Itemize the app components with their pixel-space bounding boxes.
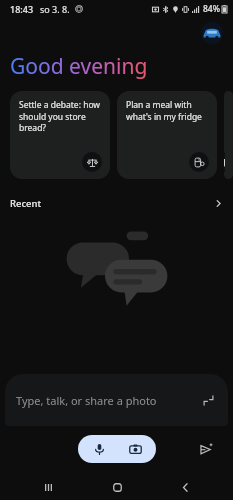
button[interactable]: Give me a workout plan [224,91,233,179]
staticText: 18:43 [10,3,34,15]
staticText: Good evening [10,52,148,81]
staticText: Recent [10,197,42,210]
button[interactable]: Recent [0,193,233,213]
button[interactable]: Voice input [85,435,113,463]
button[interactable]: Plan a meal with what's in my fridge [117,91,217,179]
button[interactable]: Send [195,438,217,460]
button[interactable]: Back [165,474,205,500]
button[interactable]: Home [97,474,137,500]
staticText: so 3. 8. [40,3,70,15]
staticText: Plan a meal with what's in my fridge [126,99,208,123]
button[interactable]: Account [201,22,223,44]
button[interactable]: Type, talk, or share a photo [5,374,228,426]
button[interactable]: Recent apps [28,474,68,500]
staticText: 84% [203,3,220,15]
button[interactable]: Settle a debate: how should you store br… [10,91,110,179]
button[interactable]: Expand [200,392,216,408]
staticText: Settle a debate: how should you store br… [19,99,101,134]
button[interactable]: Camera [121,435,149,463]
staticText: Type, talk, or share a photo [16,393,157,408]
